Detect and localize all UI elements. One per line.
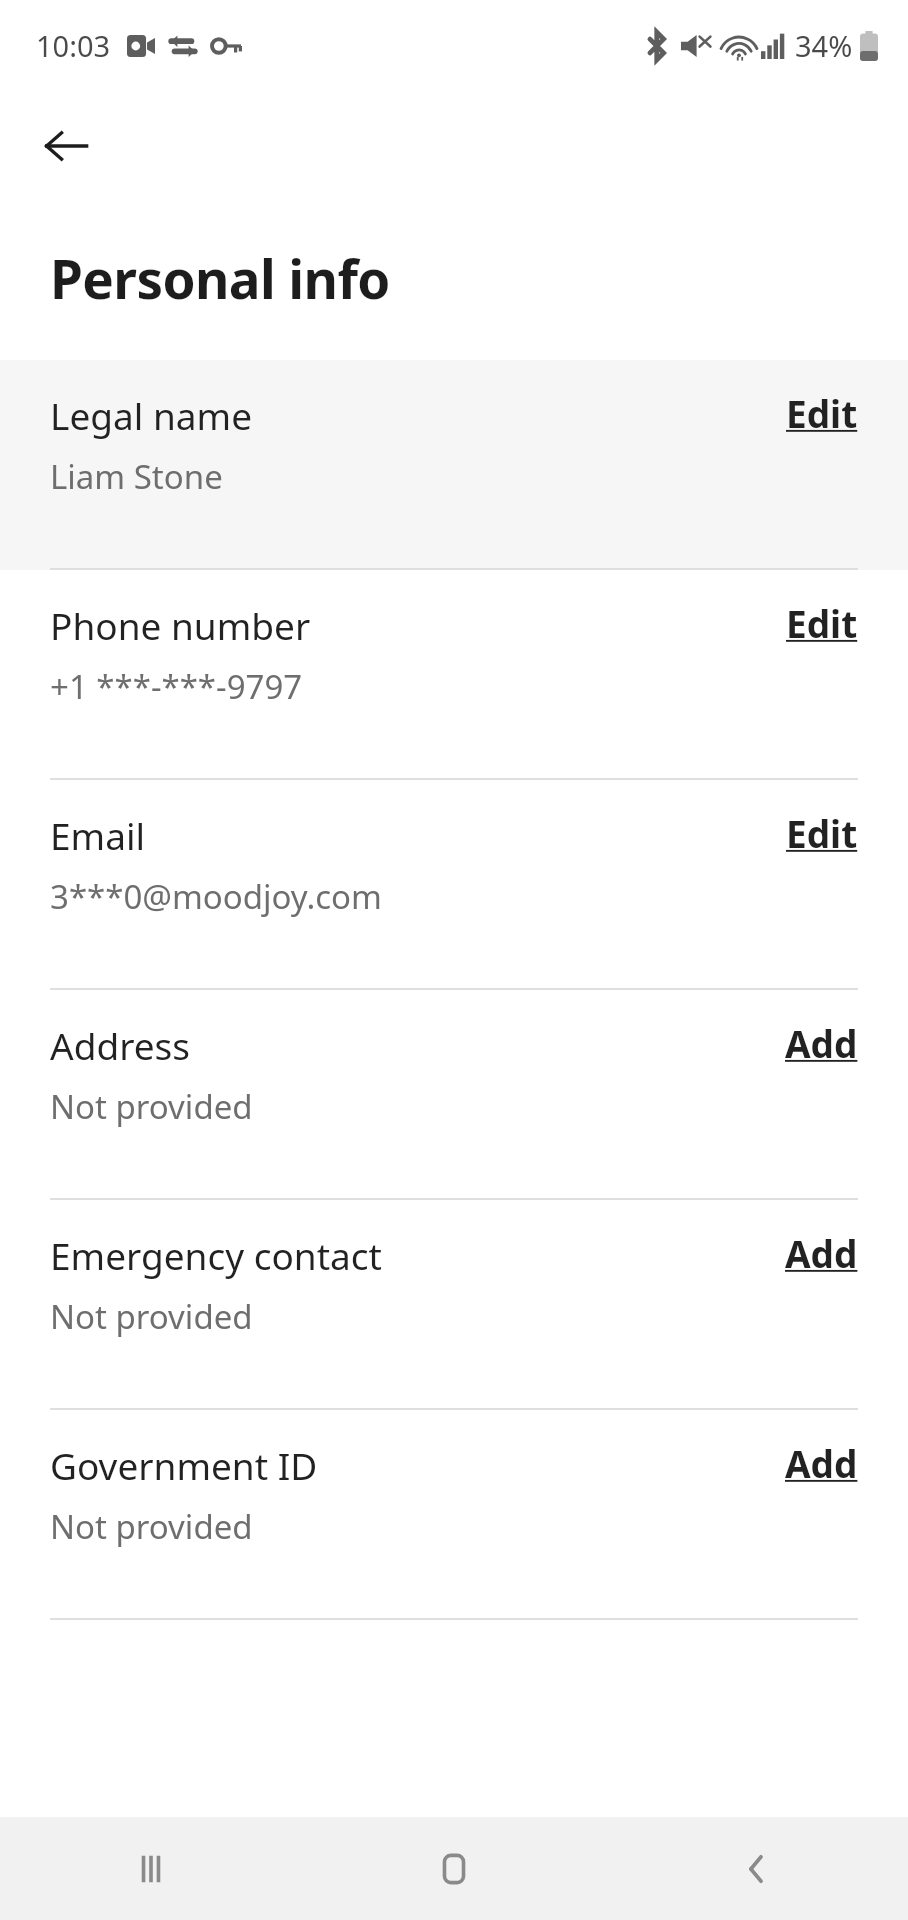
staticText: Edit (786, 598, 858, 648)
staticText: Legal name (50, 390, 253, 440)
button[interactable]: Address (0, 990, 908, 1200)
staticText: Personal info (50, 242, 390, 314)
button[interactable]: Back (18, 98, 114, 194)
staticText: Edit (786, 808, 858, 858)
button[interactable]: Email (0, 780, 908, 990)
button[interactable]: Legal name (0, 360, 908, 570)
staticText: Emergency contact (50, 1230, 382, 1280)
button[interactable]: Back (605, 1817, 908, 1920)
button[interactable]: Government ID (0, 1410, 908, 1620)
button[interactable]: Recent apps (0, 1817, 302, 1920)
button[interactable]: Emergency contact (0, 1200, 908, 1410)
staticText: 3***0@moodjoy.com (50, 874, 382, 919)
staticText: 10:03 (36, 26, 111, 65)
staticText: Edit (786, 388, 858, 438)
button[interactable]: Phone number (0, 570, 908, 780)
staticText: Add (785, 1438, 858, 1488)
staticText: +1 ***-***-9797 (50, 664, 303, 709)
staticText: Phone number (50, 600, 311, 650)
staticText: 34% (795, 26, 853, 65)
staticText: Add (785, 1018, 858, 1068)
staticText: Not provided (50, 1084, 253, 1129)
staticText: Email (50, 810, 146, 860)
staticText: Not provided (50, 1294, 253, 1339)
button[interactable]: Home (302, 1817, 605, 1920)
staticText: Government ID (50, 1440, 318, 1490)
staticText: Address (50, 1020, 191, 1070)
staticText: Not provided (50, 1504, 253, 1549)
staticText: Add (785, 1228, 858, 1278)
staticText: Liam Stone (50, 454, 223, 499)
